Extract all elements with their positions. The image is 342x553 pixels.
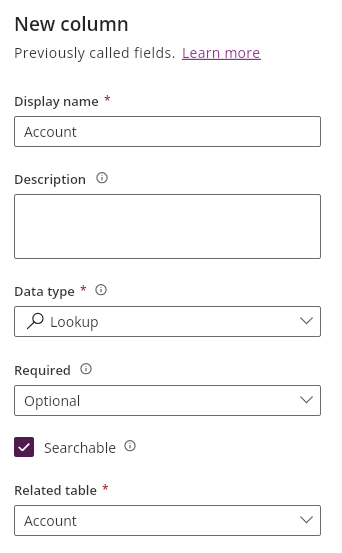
- staticText: Required: [14, 361, 71, 379]
- button[interactable]: More information: [78, 362, 94, 378]
- button[interactable]: Searchable: [14, 437, 138, 457]
- staticText: Optional: [24, 391, 300, 410]
- button[interactable]: Optional: [14, 385, 321, 416]
- staticText: Data type: [14, 282, 75, 300]
- staticText: Searchable: [44, 438, 117, 457]
- staticText: Related table: [14, 481, 97, 499]
- staticText: Description: [14, 170, 87, 188]
- button[interactable]: Learn more: [182, 43, 261, 62]
- staticText: Display name: [14, 92, 99, 110]
- button[interactable]: Lookup: [14, 306, 321, 337]
- staticText: Lookup: [50, 312, 300, 331]
- button[interactable]: Account: [14, 116, 321, 147]
- staticText: *: [102, 481, 109, 494]
- button[interactable]: More information: [93, 283, 109, 299]
- staticText: Account: [24, 122, 77, 141]
- staticText: *: [104, 92, 111, 105]
- staticText: Learn more: [182, 43, 261, 62]
- button[interactable]: More information: [122, 439, 138, 455]
- button[interactable]: [14, 194, 321, 259]
- staticText: New column: [14, 11, 129, 37]
- staticText: Account: [24, 511, 300, 530]
- button[interactable]: More information: [94, 171, 110, 187]
- staticText: *: [80, 282, 87, 295]
- button[interactable]: Account: [14, 505, 321, 536]
- staticText: Previously called fields.: [14, 43, 176, 62]
